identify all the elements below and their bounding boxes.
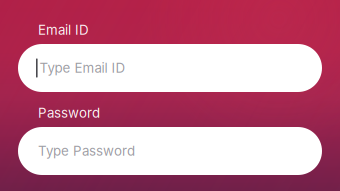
button[interactable]: Type Password <box>18 127 322 175</box>
button[interactable]: Type Email ID <box>18 44 322 92</box>
staticText: Password <box>38 105 100 121</box>
staticText: Email ID <box>38 22 89 38</box>
staticText: Type Password <box>38 143 135 159</box>
staticText: Type Email ID <box>40 60 126 76</box>
